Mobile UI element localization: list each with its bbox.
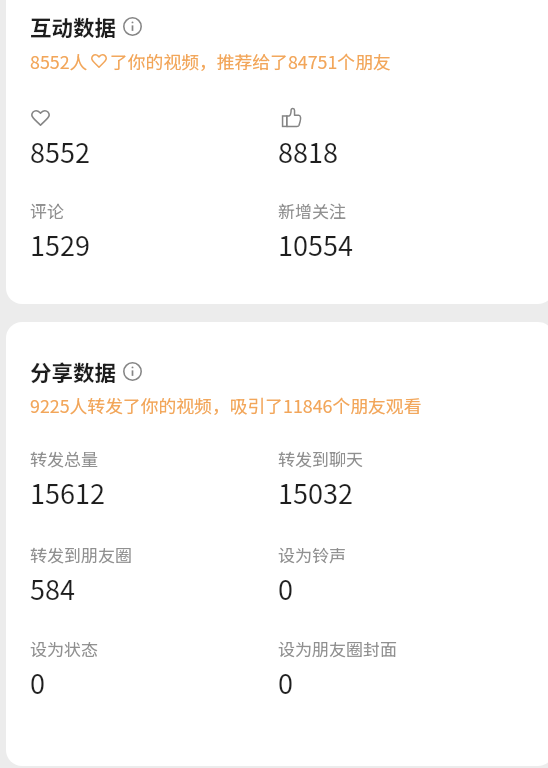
button[interactable]: 设为朋友圈封面 [278, 630, 508, 692]
staticText: 0 [278, 663, 293, 702]
button[interactable]: 转发到朋友圈 [30, 536, 260, 598]
staticText: 设为铃声 [278, 542, 346, 567]
button[interactable]: 数据说明 [122, 362, 142, 382]
staticText: 15032 [278, 473, 353, 512]
button[interactable]: 互动数据 [30, 11, 142, 42]
staticText: 8552人 [30, 48, 88, 74]
staticText: 1529 [30, 225, 90, 264]
staticText: 转发总量 [30, 446, 98, 471]
staticText: 新增关注 [278, 198, 346, 223]
staticText: 分享数据 [30, 356, 117, 387]
staticText: 584 [30, 569, 75, 608]
button[interactable]: 设为状态 [30, 630, 260, 692]
staticText: 9225人转发了你的视频，吸引了11846个朋友观看 [30, 392, 422, 418]
button[interactable]: 数据说明 [122, 17, 142, 37]
staticText: 10554 [278, 225, 353, 264]
staticText: 转发到朋友圈 [30, 542, 132, 567]
staticText: 0 [278, 569, 293, 608]
button[interactable]: 转发到聊天 [278, 440, 508, 502]
staticText: 转发到聊天 [278, 446, 363, 471]
staticText: 15612 [30, 473, 105, 512]
button[interactable]: 评论 [30, 192, 260, 254]
button[interactable]: 分享数据 [30, 356, 142, 387]
button[interactable]: 点赞 8552 [30, 104, 260, 162]
staticText: 设为状态 [30, 636, 98, 661]
staticText: 8818 [278, 132, 338, 171]
staticText: 互动数据 [30, 11, 117, 42]
button[interactable]: 推荐 8818 [278, 104, 508, 162]
staticText: 了你的视频，推荐给了84751个朋友 [110, 48, 391, 74]
staticText: 0 [30, 663, 45, 702]
button[interactable]: 设为铃声 [278, 536, 508, 598]
staticText: 评论 [30, 198, 64, 223]
button[interactable]: 转发总量 [30, 440, 260, 502]
button[interactable]: 新增关注 [278, 192, 508, 254]
staticText: 设为朋友圈封面 [278, 636, 397, 661]
staticText: 8552 [30, 132, 90, 171]
